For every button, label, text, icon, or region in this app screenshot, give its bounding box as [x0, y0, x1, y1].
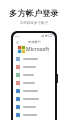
- button[interactable]: [13, 63, 55, 71]
- button[interactable]: [13, 111, 55, 119]
- button[interactable]: [13, 71, 55, 79]
- staticText: Microsoft: [26, 46, 50, 53]
- button[interactable]: 返回: [15, 40, 19, 44]
- button[interactable]: [13, 95, 55, 103]
- button[interactable]: [13, 87, 55, 95]
- staticText: 添加帐户: [28, 40, 41, 44]
- button[interactable]: [13, 79, 55, 87]
- button[interactable]: [13, 103, 55, 111]
- staticText: 支持绑定多个帐户: [20, 21, 48, 25]
- button[interactable]: [13, 55, 55, 63]
- staticText: 多方帐户登录: [9, 8, 59, 18]
- staticText: 9:41: [15, 34, 20, 37]
